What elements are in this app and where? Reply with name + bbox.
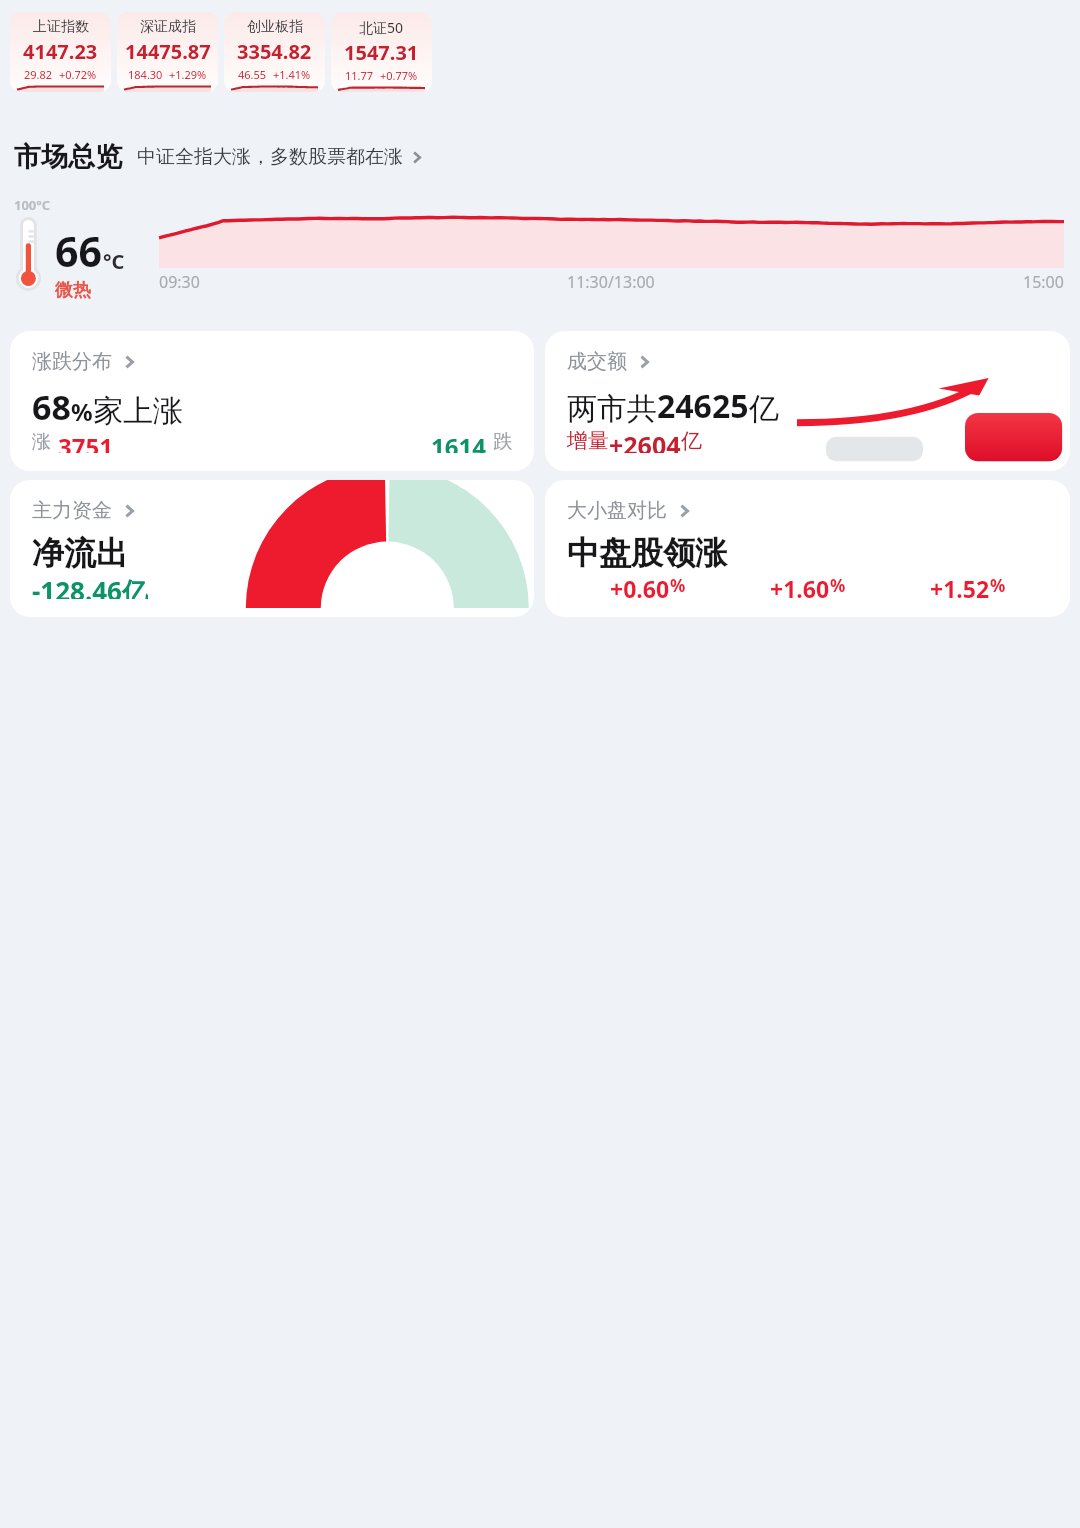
button[interactable]: 主力资金 [32,498,137,523]
staticText: -128.46亿 [32,573,148,599]
button[interactable]: 深证成指 [117,12,218,92]
staticText: 11:30/13:00 [567,271,655,293]
button[interactable]: 北证50 [331,12,432,92]
button[interactable]: 大小盘对比 [567,498,692,523]
staticText: 14475.87 [125,38,211,65]
button[interactable]: 成交额 [545,331,1070,471]
button[interactable]: 上证指数 [10,12,111,92]
staticText: 创业板指 [247,18,303,36]
staticText: 184.30 [128,67,163,82]
button[interactable]: 涨跌分布 [32,349,137,374]
staticText: 北证50 [359,18,404,37]
staticText: 29.82 [24,67,53,82]
staticText: % [670,574,686,597]
staticText: °C [103,248,125,275]
staticText: 微热 [55,279,91,301]
staticText: 净流出 [32,533,128,573]
staticText: 66 [55,223,102,279]
staticText: 1614 [431,430,486,453]
staticText: 主力资金 [32,498,112,523]
staticText: 深证成指 [140,18,196,36]
button[interactable]: 涨跌分布 [10,331,534,471]
staticText: 中盘股领涨 [567,533,727,573]
staticText: 增量 [567,428,609,453]
staticText: 亿 [749,390,779,428]
staticText: 涨 [32,430,51,453]
staticText: % [990,574,1006,597]
staticText: +2604 [609,428,681,453]
staticText: +1.52 [930,573,990,599]
staticText: 68 [32,384,71,430]
button[interactable]: 成交额 [567,349,652,374]
staticText: 4147.23 [23,38,98,65]
staticText: 3751 [58,430,113,453]
staticText: +1.41% [273,67,311,82]
staticText: 09:30 [159,271,200,293]
staticText: 15:00 [1023,271,1064,293]
button[interactable]: 大小盘对比 [545,480,1070,617]
button[interactable]: 市场总览 [14,140,1080,174]
staticText: 上证指数 [33,18,89,36]
staticText: 成交额 [567,349,627,374]
staticText: 3354.82 [237,38,312,65]
staticText: +0.60 [610,573,670,599]
staticText: 涨跌分布 [32,349,112,374]
staticText: +0.72% [59,67,97,82]
staticText: 家上涨 [93,392,183,430]
staticText: 46.55 [238,67,267,82]
staticText: 市场总览 [14,140,122,174]
staticText: 中证全指大涨，多数股票都在涨 [137,145,403,169]
staticText: +1.60 [770,573,830,599]
staticText: +1.29% [169,67,207,82]
staticText: 11.77 [345,68,374,83]
staticText: 24625 [657,384,749,428]
button[interactable]: 主力资金 [10,480,534,617]
staticText: 1547.31 [344,39,419,66]
staticText: % [71,395,93,428]
staticText: 100°C [14,196,51,214]
staticText: 大小盘对比 [567,498,667,523]
staticText: 亿 [681,428,702,453]
staticText: % [830,574,846,597]
staticText: 两市共 [567,390,657,428]
staticText: +0.77% [380,68,418,83]
staticText: 跌 [493,430,512,453]
button[interactable]: 创业板指 [224,12,325,92]
